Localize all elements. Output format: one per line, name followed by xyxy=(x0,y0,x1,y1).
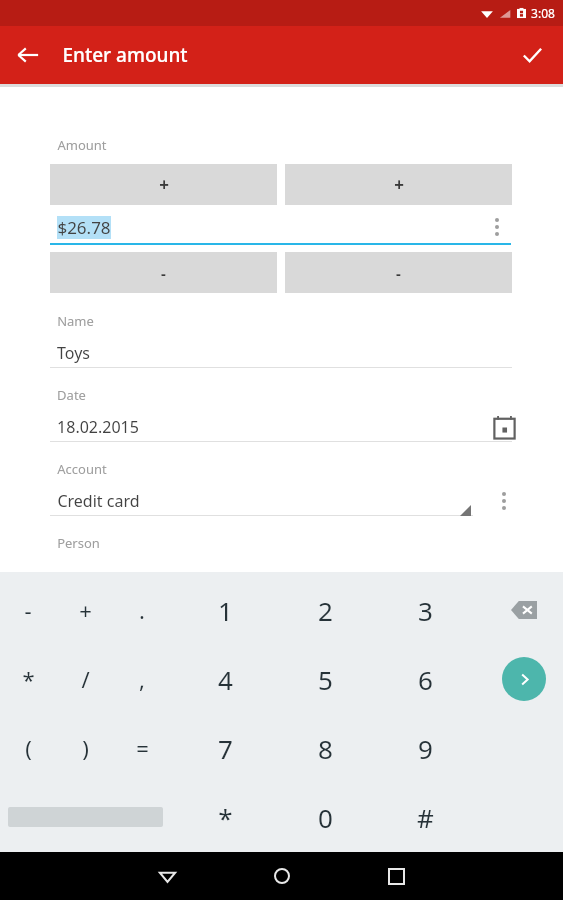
staticText: 3:08 xyxy=(531,5,555,21)
button[interactable]: = xyxy=(114,720,170,776)
staticText: 4 xyxy=(218,662,233,697)
button[interactable]: ( xyxy=(0,720,56,776)
button[interactable]: 6 xyxy=(397,651,453,707)
button[interactable]: / xyxy=(57,651,113,707)
button[interactable]: Home xyxy=(259,853,305,899)
button[interactable]: More options xyxy=(483,213,511,241)
button[interactable]: 8 xyxy=(297,720,353,776)
staticText: 1 xyxy=(218,593,233,628)
button[interactable]: + xyxy=(50,164,277,205)
staticText: 7 xyxy=(218,731,233,766)
staticText: 5 xyxy=(318,662,333,697)
staticText: 2 xyxy=(318,593,333,628)
staticText: + xyxy=(79,595,92,625)
button[interactable]: Name xyxy=(0,312,563,368)
staticText: + xyxy=(394,173,404,196)
staticText: 9 xyxy=(418,731,433,766)
button[interactable]: * xyxy=(0,651,56,707)
button[interactable]: 9 xyxy=(397,720,453,776)
button[interactable]: - xyxy=(0,582,56,638)
staticText: * xyxy=(218,800,233,835)
staticText: , xyxy=(139,664,145,694)
staticText: * xyxy=(22,664,35,694)
staticText: Name xyxy=(57,312,94,330)
staticText: = xyxy=(136,733,149,763)
button[interactable]: # xyxy=(397,789,453,845)
button[interactable]: Done xyxy=(509,32,555,78)
button[interactable]: . xyxy=(114,582,170,638)
button[interactable]: 1 xyxy=(197,582,253,638)
button[interactable]: Back xyxy=(144,853,190,899)
staticText: Account xyxy=(57,460,107,478)
staticText: 6 xyxy=(418,662,433,697)
staticText: . xyxy=(139,595,145,625)
button[interactable]: Date xyxy=(0,386,563,442)
button[interactable]: + xyxy=(285,164,512,205)
button[interactable]: Backspace xyxy=(496,582,552,638)
staticText: Person xyxy=(57,534,100,552)
button[interactable]: ) xyxy=(57,720,113,776)
button[interactable]: Back xyxy=(6,33,50,77)
staticText: Credit card xyxy=(57,490,140,512)
button[interactable]: + xyxy=(57,582,113,638)
button[interactable]: 4 xyxy=(197,651,253,707)
button[interactable]: - xyxy=(285,252,512,293)
staticText: ( xyxy=(25,733,32,763)
button[interactable]: 2 xyxy=(297,582,353,638)
staticText: 0 xyxy=(318,800,333,835)
staticText: 8 xyxy=(318,731,333,766)
staticText: - xyxy=(24,595,32,625)
staticText: - xyxy=(161,263,166,283)
button[interactable]: 5 xyxy=(297,651,353,707)
button[interactable]: - xyxy=(50,252,277,293)
staticText: Enter amount xyxy=(62,42,188,68)
staticText: Date xyxy=(57,386,86,404)
staticText: / xyxy=(81,664,90,694)
staticText: Toys xyxy=(57,342,90,364)
staticText: 3 xyxy=(418,593,433,628)
button[interactable]: 3 xyxy=(397,582,453,638)
button[interactable]: Recent apps xyxy=(373,853,419,899)
staticText: ) xyxy=(82,733,89,763)
staticText: # xyxy=(417,800,434,835)
staticText: 18.02.2015 xyxy=(57,416,139,438)
button[interactable]: 0 xyxy=(297,789,353,845)
button[interactable]: Enter xyxy=(496,651,552,707)
staticText: + xyxy=(159,173,169,196)
staticText: - xyxy=(396,263,401,283)
staticText: $26.78 xyxy=(57,216,111,239)
button[interactable]: , xyxy=(114,651,170,707)
button[interactable]: Account xyxy=(0,460,563,516)
staticText: Amount xyxy=(57,136,107,154)
button[interactable]: * xyxy=(197,789,253,845)
button[interactable]: 7 xyxy=(197,720,253,776)
